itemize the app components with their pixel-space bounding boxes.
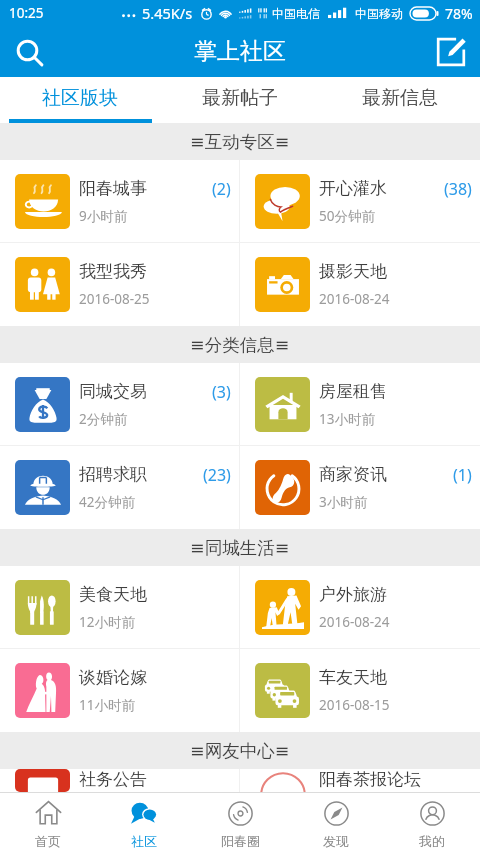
staticText: 13小时前 — [319, 410, 375, 428]
staticText: 房屋租售 — [319, 381, 387, 402]
button[interactable]: 我的 — [384, 793, 480, 853]
button[interactable]: 阳春茶报论坛 — [240, 769, 480, 792]
button[interactable]: 社区 — [96, 793, 192, 853]
button[interactable]: 谈婚论嫁 — [0, 649, 239, 732]
staticText: 中国移动 — [355, 6, 403, 21]
staticText: (1) — [453, 464, 472, 486]
button[interactable]: 阳春圈 — [192, 793, 288, 853]
staticText: 车友天地 — [319, 667, 387, 688]
button[interactable]: 最新帖子 — [160, 77, 320, 119]
staticText: 户外旅游 — [319, 584, 387, 605]
staticText: 50分钟前 — [319, 207, 375, 225]
button[interactable]: 美食天地 — [0, 566, 239, 648]
button[interactable]: 发现 — [288, 793, 384, 853]
staticText: 社区 — [131, 833, 157, 849]
staticText: 社区版块 — [42, 86, 118, 110]
staticText: ≡网友中心≡ — [190, 740, 290, 762]
staticText: (23) — [203, 464, 231, 486]
button[interactable]: 社务公告 — [0, 769, 239, 792]
staticText: (2) — [212, 178, 231, 200]
staticText: ≡互动专区≡ — [190, 131, 290, 153]
staticText: 最新信息 — [362, 86, 438, 110]
button[interactable]: 同城交易 — [0, 363, 239, 445]
staticText: 2016-08-15 — [319, 696, 390, 714]
staticText: 最新帖子 — [202, 86, 278, 110]
button[interactable]: 开心灌水 — [240, 160, 480, 242]
staticText: 同城交易 — [79, 381, 147, 402]
staticText: 招聘求职 — [79, 464, 147, 485]
staticText: 摄影天地 — [319, 261, 387, 282]
staticText: 首页 — [35, 833, 61, 849]
staticText: 2016-08-24 — [319, 613, 390, 631]
staticText: 开心灌水 — [319, 178, 387, 199]
staticText: 9小时前 — [79, 207, 128, 225]
button[interactable]: 最新信息 — [320, 77, 480, 119]
button[interactable]: 商家资讯 — [240, 446, 480, 529]
button[interactable]: 我型我秀 — [0, 243, 239, 326]
staticText: 中国电信 — [272, 6, 320, 21]
staticText: 我的 — [419, 833, 445, 849]
staticText: 5.45K/s — [142, 3, 193, 23]
staticText: 42分钟前 — [79, 493, 135, 511]
staticText: 10:25 — [9, 4, 44, 22]
staticText: 阳春圈 — [221, 833, 260, 849]
staticText: 发现 — [323, 833, 349, 849]
staticText: 2016-08-24 — [319, 290, 390, 308]
staticText: 商家资讯 — [319, 464, 387, 485]
staticText: ≡同城生活≡ — [190, 537, 290, 559]
staticText: (3) — [212, 381, 231, 403]
button[interactable]: 社区版块 — [0, 77, 160, 119]
staticText: 阳春城事 — [79, 178, 147, 199]
staticText: 我型我秀 — [79, 261, 147, 282]
staticText: 掌上社区 — [194, 37, 286, 66]
staticText: (38) — [444, 178, 472, 200]
button[interactable]: 招聘求职 — [0, 446, 239, 529]
button[interactable]: 阳春城事 — [0, 160, 239, 242]
button[interactable]: 摄影天地 — [240, 243, 480, 326]
staticText: 2分钟前 — [79, 410, 128, 428]
staticText: 3小时前 — [319, 493, 368, 511]
staticText: 12小时前 — [79, 613, 135, 631]
staticText: 谈婚论嫁 — [79, 667, 147, 688]
staticText: 2016-08-25 — [79, 290, 150, 308]
button[interactable]: Search — [6, 29, 52, 75]
button[interactable]: 首页 — [0, 793, 96, 853]
staticText: 美食天地 — [79, 584, 147, 605]
button[interactable]: 户外旅游 — [240, 566, 480, 648]
staticText: 11小时前 — [79, 696, 135, 714]
staticText: 阳春茶报论坛 — [319, 769, 421, 790]
staticText: ≡分类信息≡ — [190, 334, 290, 356]
button[interactable]: Compose new post — [428, 29, 474, 75]
staticText: 78% — [445, 4, 473, 23]
button[interactable]: 车友天地 — [240, 649, 480, 732]
button[interactable]: 房屋租售 — [240, 363, 480, 445]
staticText: 社务公告 — [79, 769, 147, 790]
